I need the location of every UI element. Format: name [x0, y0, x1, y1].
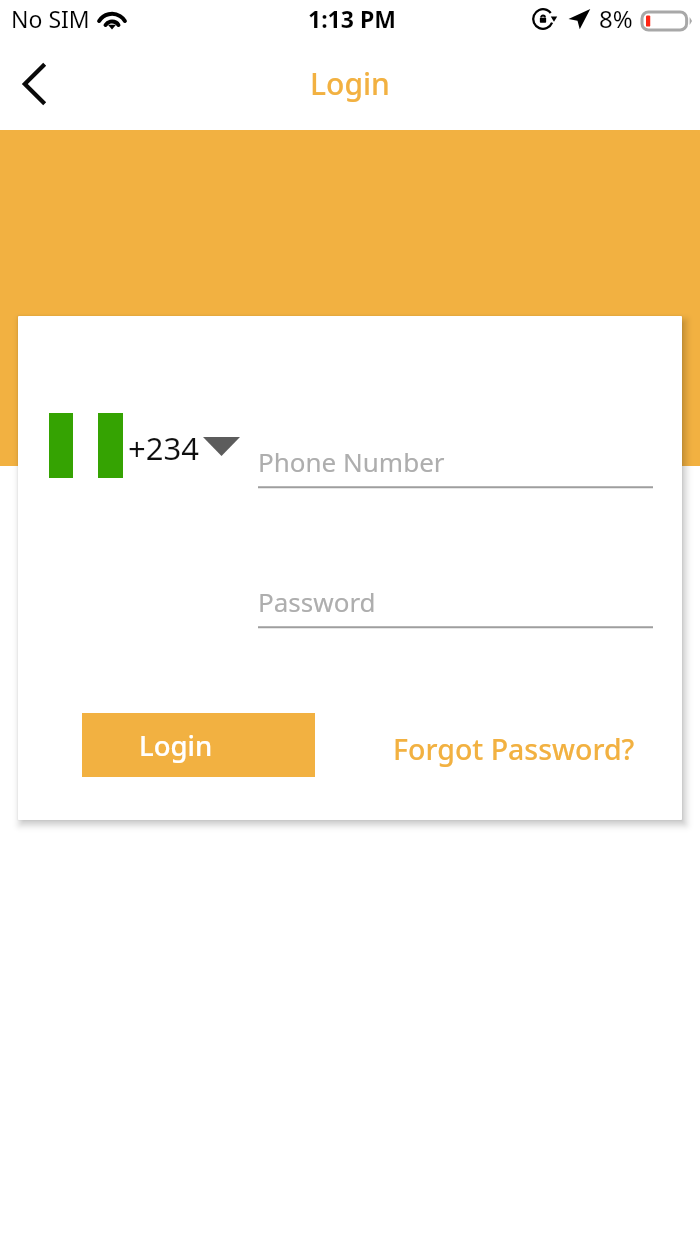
- staticText: 1:13 PM: [308, 3, 396, 34]
- staticText: 8%: [599, 2, 633, 35]
- staticText: +234: [128, 427, 199, 469]
- button[interactable]: Phone Number: [258, 444, 653, 493]
- button[interactable]: Login: [82, 713, 315, 777]
- button[interactable]: Forgot Password?: [385, 724, 643, 775]
- staticText: Password: [258, 584, 376, 619]
- button[interactable]: Password: [258, 584, 653, 633]
- button[interactable]: Select country code: [49, 413, 240, 478]
- button[interactable]: Back: [0, 51, 66, 117]
- staticText: Forgot Password?: [393, 730, 635, 769]
- staticText: Phone Number: [258, 444, 445, 479]
- staticText: Login: [310, 63, 390, 104]
- staticText: No SIM: [11, 3, 90, 34]
- staticText: Login: [139, 727, 213, 764]
